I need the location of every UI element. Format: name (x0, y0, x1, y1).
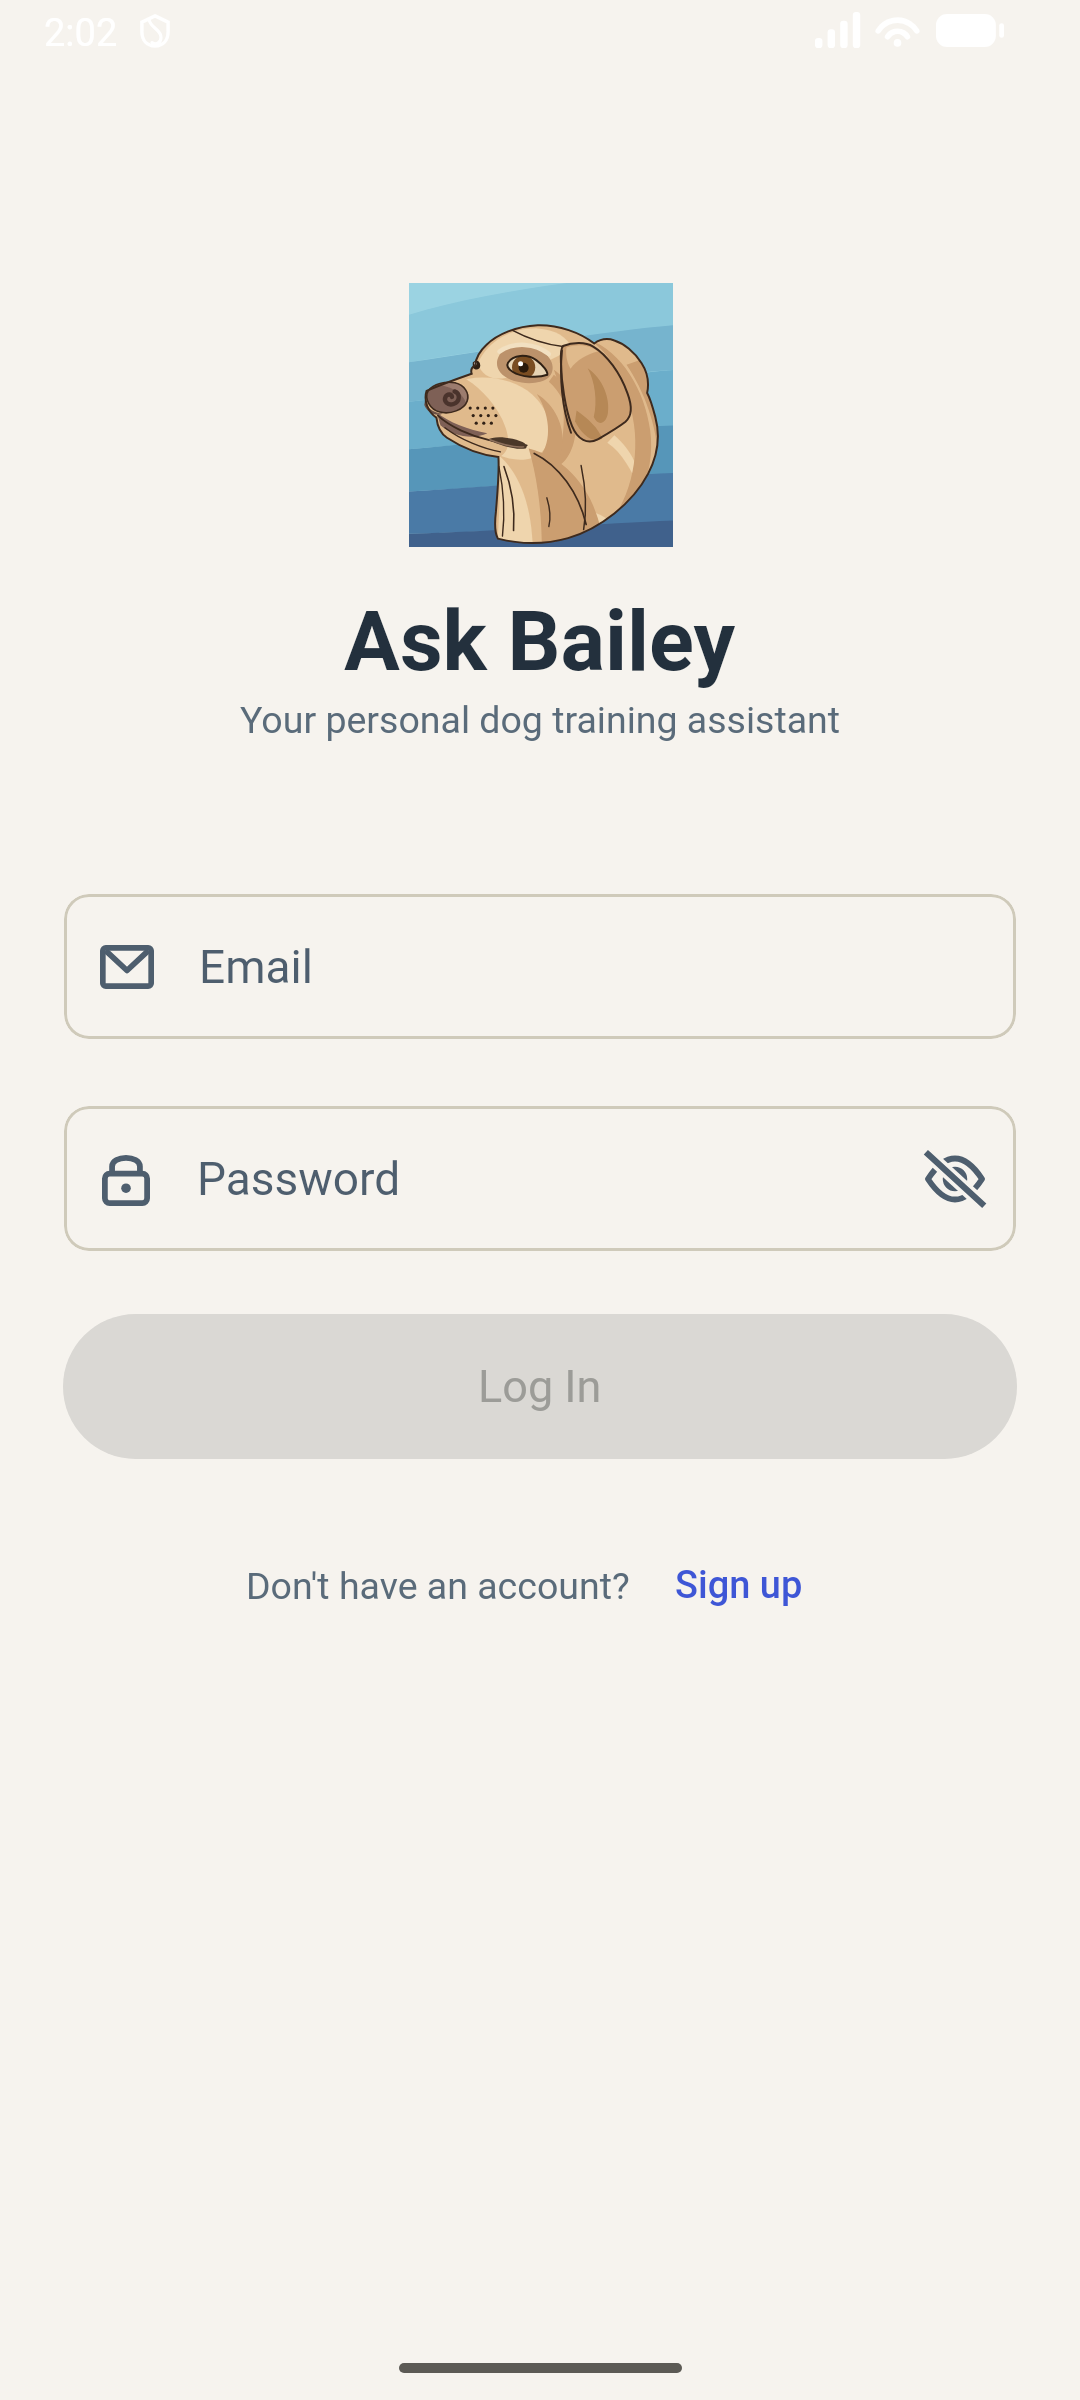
button[interactable]: Password (64, 1106, 1016, 1251)
button[interactable]: Log In (63, 1314, 1017, 1459)
staticText: Don't have an account? (246, 1564, 630, 1608)
staticText: Password (197, 1152, 401, 1206)
button[interactable]: Show password (910, 1134, 1000, 1224)
staticText: Sign up (675, 1563, 803, 1608)
staticText: 2:02 (44, 11, 118, 56)
staticText: Ask Bailey (344, 593, 736, 690)
button[interactable]: Email (64, 894, 1016, 1039)
staticText: Log In (478, 1360, 602, 1413)
staticText: Your personal dog training assistant (240, 698, 841, 742)
button[interactable]: Sign up (675, 1563, 803, 1608)
staticText: Email (199, 940, 313, 994)
